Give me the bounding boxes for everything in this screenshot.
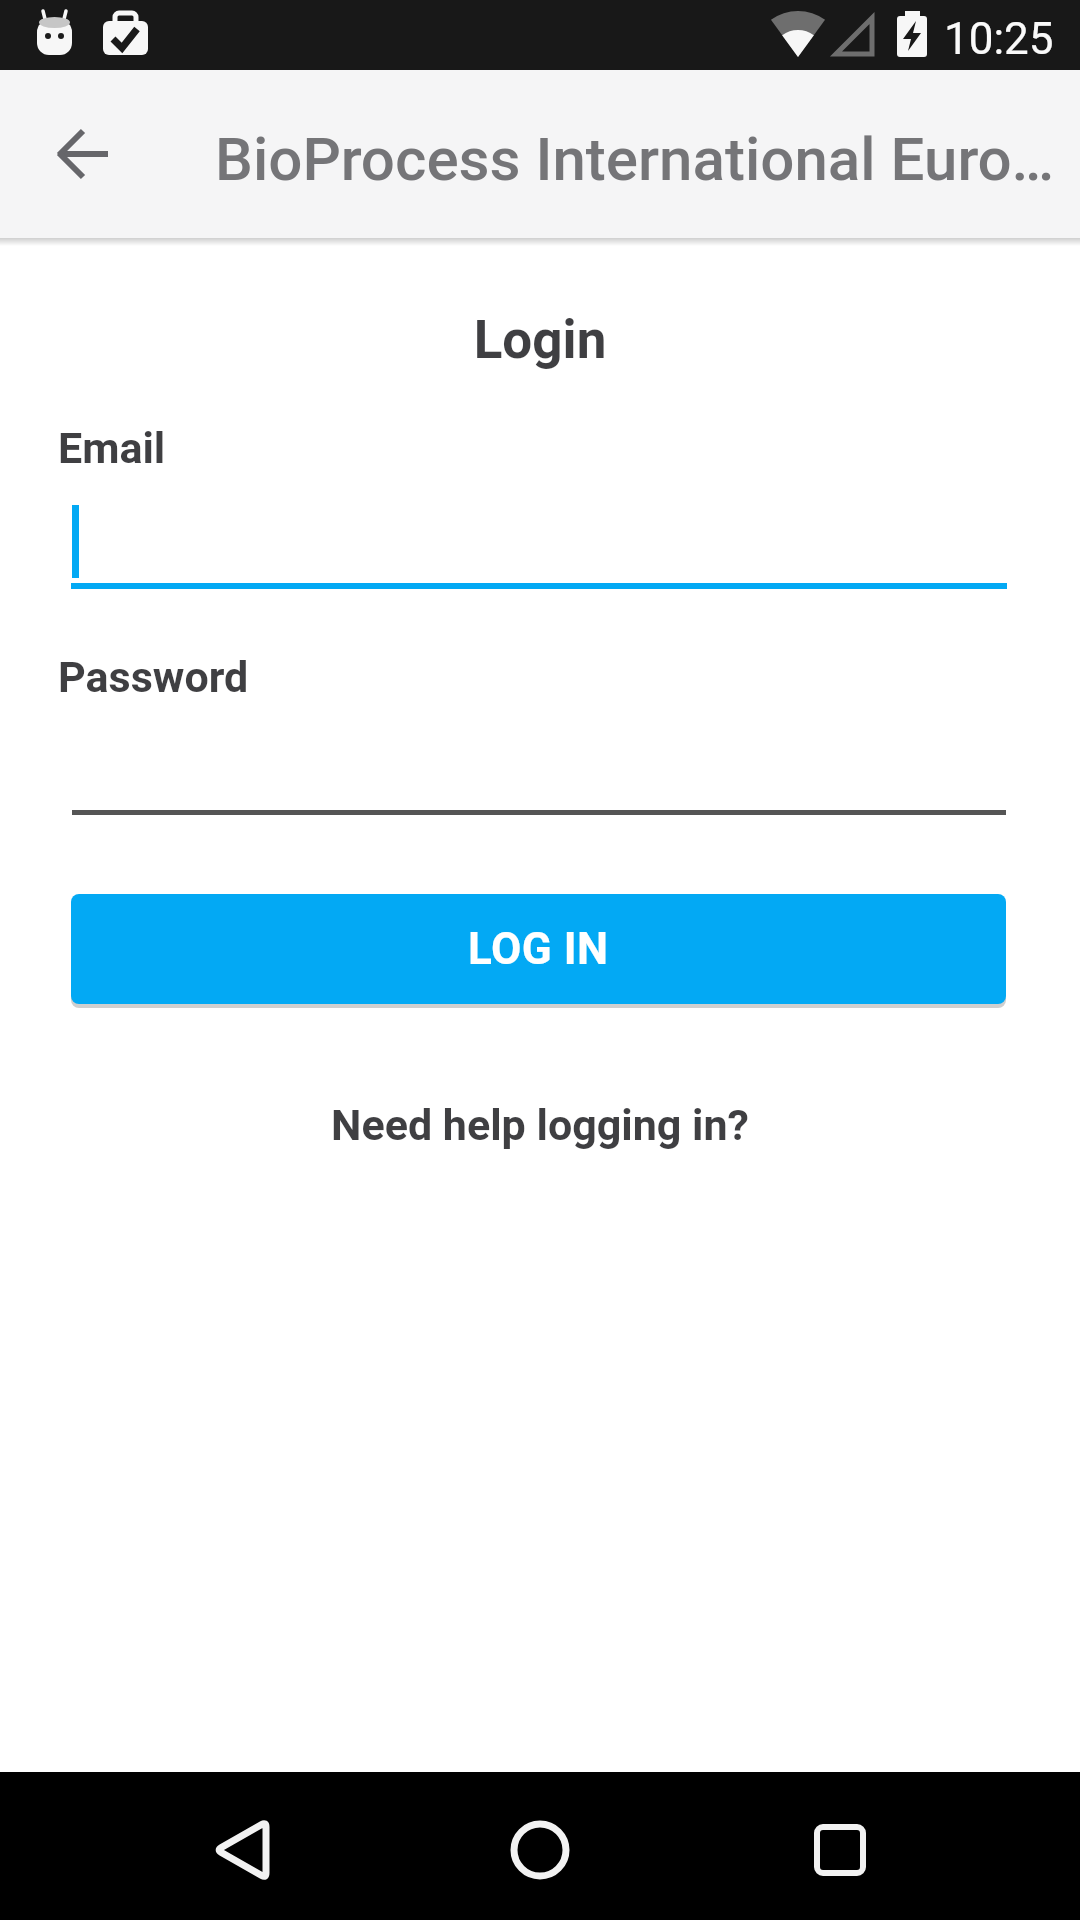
staticText: 10:25 [944,13,1054,65]
staticText: Login [0,309,1080,371]
staticText: Need help logging in? [0,1100,1080,1150]
button[interactable]: Need help logging in? [0,1100,1080,1150]
button[interactable]: LOG IN [71,894,1006,1004]
staticText: BioProcess International Euro… [215,124,1054,194]
button[interactable] [0,1772,360,1920]
staticText: Email [58,423,166,473]
button[interactable] [28,98,140,210]
button[interactable] [60,488,1008,589]
button[interactable] [60,718,1008,815]
button[interactable] [360,1772,720,1920]
button[interactable] [720,1772,1080,1920]
staticText: Password [58,652,249,702]
staticText: LOG IN [468,923,609,975]
